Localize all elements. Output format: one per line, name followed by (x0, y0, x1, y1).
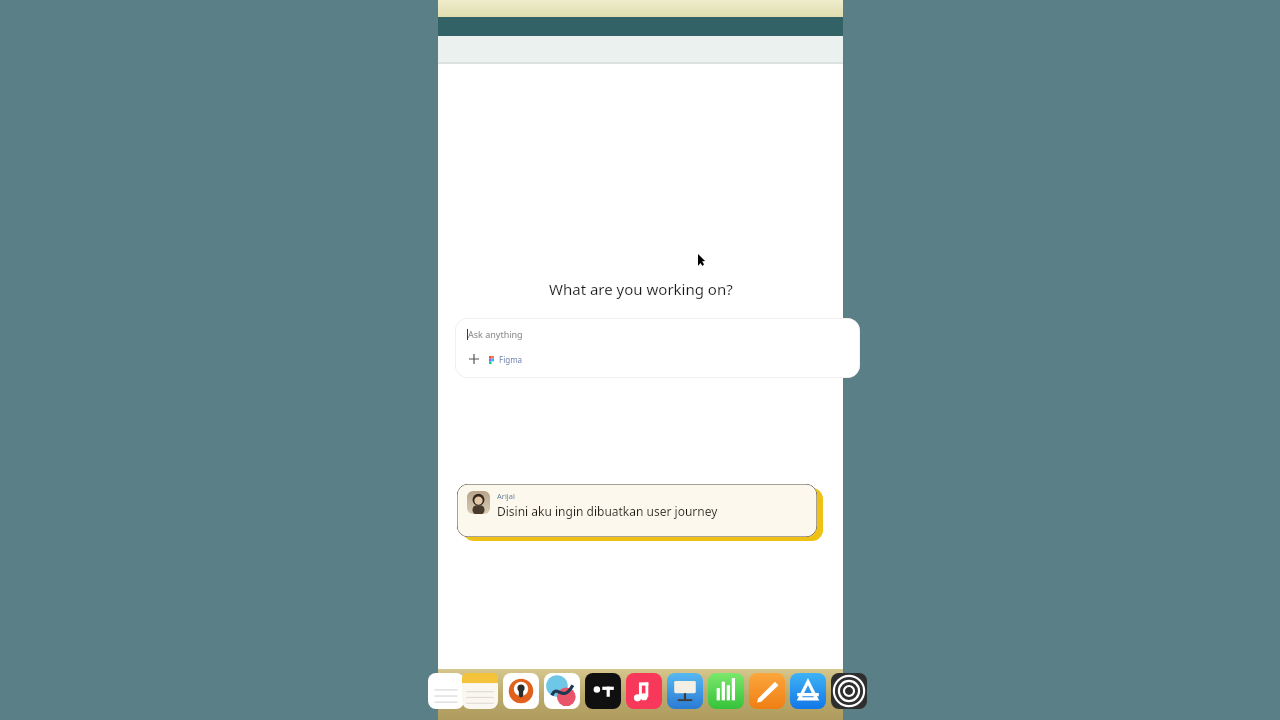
button[interactable]: Ask anything (455, 318, 860, 378)
button[interactable]: Add attachment (467, 352, 481, 366)
button[interactable]: Dock app (708, 673, 744, 709)
button[interactable]: Dock app (544, 673, 580, 709)
staticText: Ask anything (468, 328, 523, 340)
button[interactable]: Dock app (428, 673, 464, 709)
button[interactable]: Dock app (503, 673, 539, 709)
button[interactable]: Figma (489, 354, 523, 365)
button[interactable]: Dock app (462, 673, 498, 709)
button[interactable]: Dock app (831, 673, 867, 709)
button[interactable]: Dock app (585, 673, 621, 709)
button[interactable]: Dock app (626, 673, 662, 709)
staticText: What are you working on? (549, 279, 733, 299)
button[interactable]: Dock app (667, 673, 703, 709)
button[interactable]: Dock app (790, 673, 826, 709)
button[interactable]: Dock app (749, 673, 785, 709)
button[interactable]: Arijal (457, 484, 817, 537)
staticText: Disini aku ingin dibuatkan user journey (497, 503, 718, 519)
staticText: Arijal (497, 491, 515, 501)
staticText: Figma (499, 354, 523, 365)
